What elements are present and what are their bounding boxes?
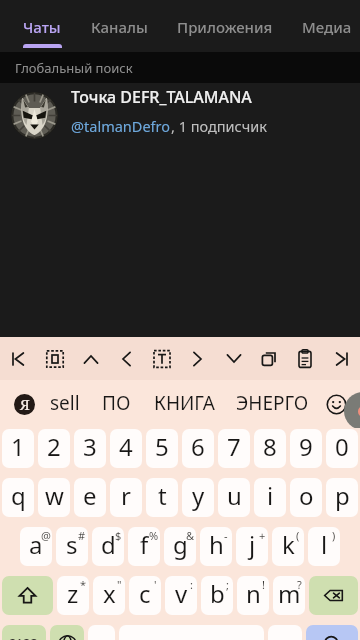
staticText: Я	[20, 394, 30, 414]
button[interactable]: j	[236, 527, 268, 566]
button[interactable]: g	[164, 527, 196, 566]
button[interactable]: ЭНЕРГО	[236, 380, 309, 428]
button[interactable]: r	[110, 478, 142, 517]
button[interactable]: q	[2, 478, 34, 517]
button[interactable]: ПО	[102, 380, 131, 428]
button[interactable]: Assistant	[344, 392, 360, 430]
button[interactable]: ?123	[2, 625, 46, 640]
button[interactable]: Точка DEFR_TALAMANA	[0, 83, 360, 147]
button[interactable]: f	[128, 527, 160, 566]
button[interactable]: Paste	[289, 337, 321, 380]
button[interactable]: l	[308, 527, 340, 566]
button[interactable]: Copy	[253, 337, 285, 380]
button[interactable]: Backspace	[309, 576, 358, 615]
button[interactable]: Каналы	[91, 3, 148, 51]
button[interactable]: h	[200, 527, 232, 566]
button[interactable]: o	[290, 478, 322, 517]
button[interactable]: v	[165, 576, 197, 615]
button[interactable]: Go to end	[325, 337, 357, 380]
staticText: m	[278, 577, 301, 610]
staticText: ;	[226, 577, 229, 592]
button[interactable]: .	[268, 625, 302, 640]
button[interactable]: d	[92, 527, 124, 566]
button[interactable]: ,	[88, 625, 115, 640]
staticText: t	[158, 479, 167, 512]
button[interactable]: 4	[110, 429, 142, 468]
staticText: Точка DEFR_TALAMANA	[71, 86, 252, 108]
staticText: ?	[297, 577, 302, 592]
button[interactable]: Change language	[50, 625, 84, 640]
staticText: o	[299, 479, 314, 512]
button[interactable]: sell	[50, 380, 80, 428]
button[interactable]: Search	[306, 625, 358, 640]
staticText: r	[121, 479, 131, 512]
button[interactable]: k	[272, 527, 304, 566]
button[interactable]: Select all	[39, 337, 71, 380]
button[interactable]: z	[57, 576, 89, 615]
button[interactable]: 8	[254, 429, 286, 468]
button[interactable]: t	[146, 478, 178, 517]
button[interactable]: Медиа	[302, 3, 352, 51]
staticText: ЭНЕРГО	[236, 390, 309, 416]
staticText: j	[249, 528, 256, 561]
button[interactable]: Move down	[218, 337, 250, 380]
button[interactable]: Чаты	[23, 3, 61, 51]
staticText: 1	[11, 430, 25, 463]
staticText: w	[45, 479, 64, 512]
button[interactable]: Go to start	[3, 337, 35, 380]
button[interactable]: Move up	[75, 337, 107, 380]
staticText: *	[80, 577, 87, 592]
button[interactable]: y	[182, 478, 214, 517]
button[interactable]: b	[201, 576, 233, 615]
staticText: ПО	[102, 390, 131, 416]
button[interactable]: s	[56, 527, 88, 566]
staticText: &	[186, 528, 195, 543]
staticText: a	[29, 528, 43, 561]
button[interactable]: p	[326, 478, 358, 517]
staticText: (	[296, 528, 300, 543]
staticText: 2	[47, 430, 61, 463]
button[interactable]: Move right	[182, 337, 214, 380]
button[interactable]: Shift	[2, 576, 53, 615]
button[interactable]: 1	[2, 429, 34, 468]
button[interactable]: 2	[38, 429, 70, 468]
button[interactable]: a	[20, 527, 52, 566]
staticText: +	[259, 528, 266, 543]
staticText: :	[190, 577, 193, 592]
staticText: %	[149, 528, 159, 543]
button[interactable]: КНИГА	[154, 380, 215, 428]
button[interactable]: 5	[146, 429, 178, 468]
button[interactable]: Select text	[146, 337, 178, 380]
staticText: f	[140, 528, 149, 561]
button[interactable]: Yandex	[14, 394, 35, 415]
button[interactable]: 9	[290, 429, 322, 468]
button[interactable]: i	[254, 478, 286, 517]
button[interactable]: 0	[326, 429, 358, 468]
button[interactable]: w	[38, 478, 70, 517]
button[interactable]: c	[129, 576, 161, 615]
staticText: 5	[155, 430, 169, 463]
button[interactable]: 3	[74, 429, 106, 468]
staticText: i	[267, 479, 274, 512]
staticText: k	[282, 528, 295, 561]
button[interactable]: x	[93, 576, 125, 615]
staticText: -	[224, 528, 228, 543]
button[interactable]: e	[74, 478, 106, 517]
button[interactable]: Move left	[110, 337, 142, 380]
staticText: 6	[191, 430, 205, 463]
button[interactable]: 6	[182, 429, 214, 468]
button[interactable]: Приложения	[177, 3, 273, 51]
staticText: $	[115, 528, 122, 543]
button[interactable]: 7	[218, 429, 250, 468]
staticText: Приложения	[177, 17, 273, 37]
button[interactable]: u	[218, 478, 250, 517]
button[interactable]: n	[237, 576, 269, 615]
button[interactable]: m	[273, 576, 305, 615]
staticText: c	[139, 577, 151, 610]
staticText: x	[103, 577, 116, 610]
button[interactable]: Emoji	[322, 390, 350, 418]
staticText: 3	[83, 430, 97, 463]
staticText: Медиа	[302, 17, 352, 37]
